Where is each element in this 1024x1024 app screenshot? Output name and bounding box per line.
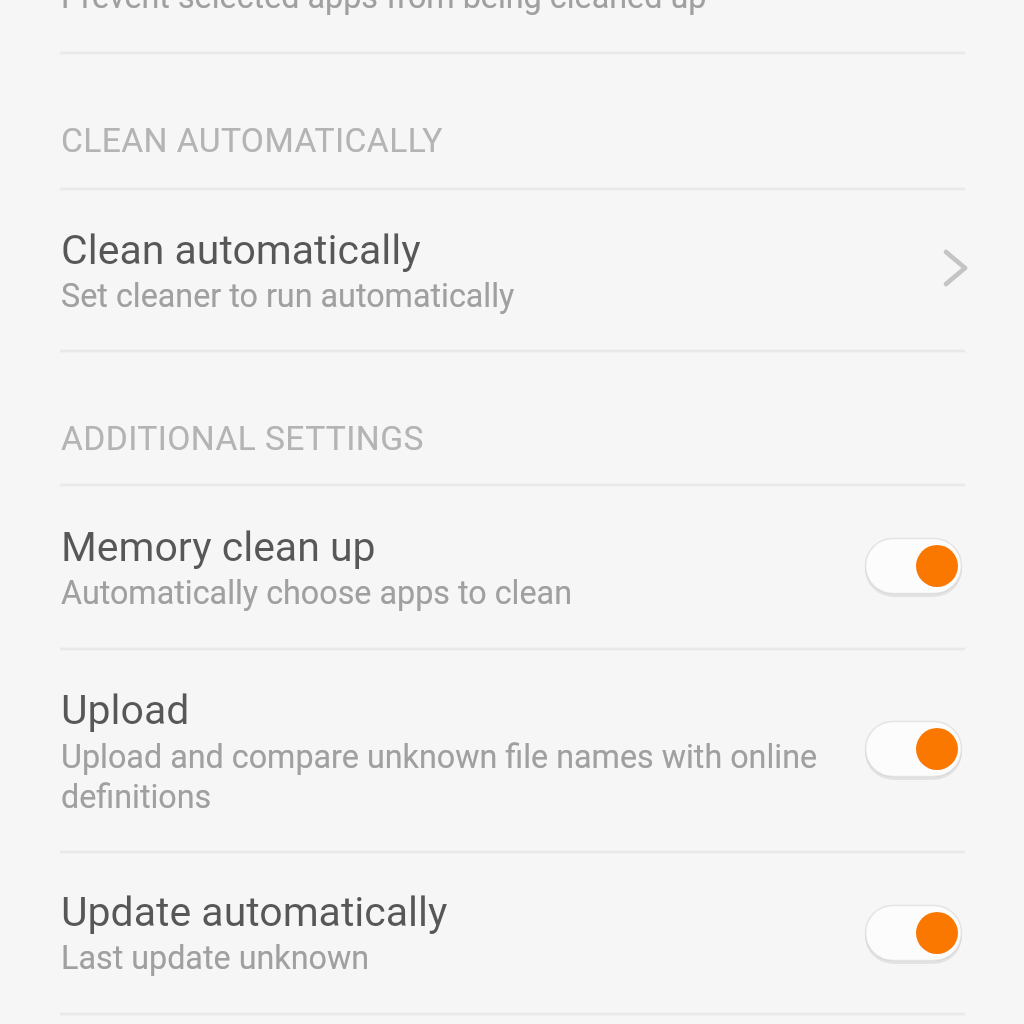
button[interactable]: Memory clean up — [865, 538, 962, 594]
button[interactable]: Prevent selected apps from being cleaned… — [0, 0, 1024, 52]
staticText: Automatically choose apps to clean — [61, 574, 572, 612]
button[interactable]: Clean automatically — [0, 190, 1024, 350]
button[interactable]: Update automatically — [0, 853, 1024, 1013]
button[interactable]: Update automatically — [865, 905, 962, 961]
staticText: CLEAN AUTOMATICALLY — [61, 121, 443, 160]
staticText: Memory clean up — [61, 523, 376, 571]
staticText: Upload — [61, 686, 190, 734]
staticText: Set cleaner to run automatically — [61, 277, 515, 315]
staticText: ADDITIONAL SETTINGS — [61, 419, 424, 458]
button[interactable]: Upload — [0, 650, 1024, 851]
staticText: Clean automatically — [61, 226, 421, 274]
button[interactable]: Upload — [865, 721, 962, 777]
button[interactable]: Open Clean automatically settings — [922, 236, 986, 300]
staticText: Upload and compare unknown file names wi… — [61, 738, 821, 816]
staticText: Update automatically — [61, 888, 448, 936]
button[interactable]: Memory clean up — [0, 486, 1024, 648]
staticText: Prevent selected apps from being cleaned… — [61, 0, 707, 16]
staticText: Last update unknown — [61, 939, 370, 977]
